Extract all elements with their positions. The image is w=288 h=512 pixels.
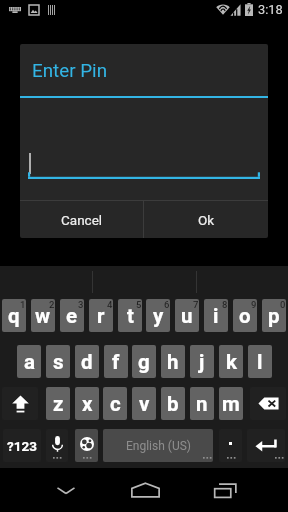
staticText: s [53, 350, 64, 374]
button[interactable]: k [219, 345, 243, 378]
staticText: k [226, 350, 237, 374]
staticText: 0 [280, 299, 286, 310]
staticText: Ok [198, 212, 215, 228]
button[interactable]: Backspace [250, 387, 286, 420]
button[interactable]: n [190, 387, 214, 420]
button[interactable]: Enter [247, 429, 285, 462]
button[interactable]: c [103, 387, 127, 420]
button[interactable]: i [204, 299, 228, 332]
button[interactable]: Change language [75, 429, 98, 462]
staticText: p [268, 304, 280, 328]
staticText: h [167, 350, 179, 374]
button[interactable]: y [146, 299, 170, 332]
button[interactable] [219, 429, 242, 462]
staticText: l [257, 350, 263, 374]
staticText: t [127, 304, 134, 328]
staticText: q [8, 304, 20, 328]
staticText: 4 [107, 299, 113, 310]
staticText: Enter Pin [32, 60, 108, 82]
staticText: v [139, 392, 150, 416]
button[interactable]: z [46, 387, 70, 420]
button[interactable]: Recent apps [211, 479, 240, 501]
staticText: u [181, 304, 193, 328]
button[interactable]: w [31, 299, 55, 332]
button[interactable]: a [17, 345, 41, 378]
button[interactable]: s [46, 345, 70, 378]
button[interactable]: Home [130, 479, 160, 501]
button[interactable]: x [75, 387, 99, 420]
staticText: g [138, 350, 150, 374]
button[interactable]: m [219, 387, 243, 420]
staticText: r [97, 304, 105, 328]
staticText: 1 [20, 299, 26, 310]
staticText: w [35, 304, 51, 328]
button[interactable]: Cancel [20, 201, 143, 238]
button[interactable]: j [190, 345, 214, 378]
staticText: f [112, 350, 120, 374]
button[interactable]: g [132, 345, 156, 378]
button[interactable]: l [248, 345, 272, 378]
button[interactable]: English (US) [103, 429, 213, 462]
button[interactable]: u [175, 299, 199, 332]
button[interactable]: Shift [2, 387, 38, 420]
button[interactable]: v [132, 387, 156, 420]
staticText: d [81, 350, 93, 374]
staticText: m [222, 392, 240, 416]
button[interactable]: Voice input [46, 429, 68, 462]
staticText: c [110, 392, 121, 416]
staticText: 8 [222, 299, 228, 310]
button[interactable]: d [75, 345, 99, 378]
staticText: 3:18 [258, 2, 283, 17]
staticText: 5 [136, 299, 142, 310]
button[interactable]: ?123 [3, 429, 41, 462]
staticText: 2 [49, 299, 55, 310]
button[interactable]: o [233, 299, 257, 332]
staticText: a [24, 350, 35, 374]
button[interactable]: r [89, 299, 113, 332]
staticText: Cancel [61, 212, 103, 228]
staticText: x [82, 392, 93, 416]
button[interactable]: h [161, 345, 185, 378]
button[interactable]: Ok [144, 201, 268, 238]
button[interactable]: b [161, 387, 185, 420]
button[interactable]: q [2, 299, 26, 332]
staticText: 3 [78, 299, 84, 310]
staticText: n [196, 392, 208, 416]
staticText: 6 [164, 299, 170, 310]
staticText: i [213, 304, 219, 328]
button[interactable]: t [118, 299, 142, 332]
button[interactable]: f [104, 345, 128, 378]
button[interactable]: p [262, 299, 286, 332]
staticText: y [153, 304, 164, 328]
button[interactable]: e [60, 299, 84, 332]
staticText: b [167, 392, 179, 416]
staticText: ?123 [7, 438, 37, 454]
staticText: English (US) [126, 439, 191, 453]
staticText: o [239, 304, 251, 328]
staticText: z [53, 392, 64, 416]
staticText: 9 [251, 299, 257, 310]
staticText: 7 [193, 299, 199, 310]
staticText: j [199, 350, 205, 374]
staticText: e [66, 304, 78, 328]
button[interactable]: Back [51, 479, 80, 501]
